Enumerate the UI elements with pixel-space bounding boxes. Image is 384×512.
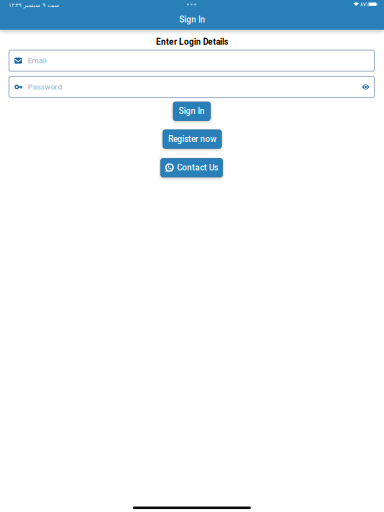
staticText: Email	[28, 56, 47, 65]
button[interactable]: Show password	[359, 77, 373, 96]
staticText: Enter Login Details	[156, 37, 228, 47]
staticText: Sign In	[179, 15, 205, 25]
button[interactable]: Register now	[163, 130, 221, 148]
staticText: Sign In	[179, 106, 205, 116]
staticText: Contact Us	[177, 163, 218, 173]
staticText: ٨٧٪	[360, 1, 369, 8]
staticText: سبت ٩ سبتمبر ١٢:٢٩	[8, 2, 59, 8]
button[interactable]: Contact Us	[161, 159, 222, 177]
staticText: Password	[28, 82, 62, 91]
button[interactable]: Sign In	[173, 102, 210, 120]
staticText: Register now	[168, 134, 216, 144]
